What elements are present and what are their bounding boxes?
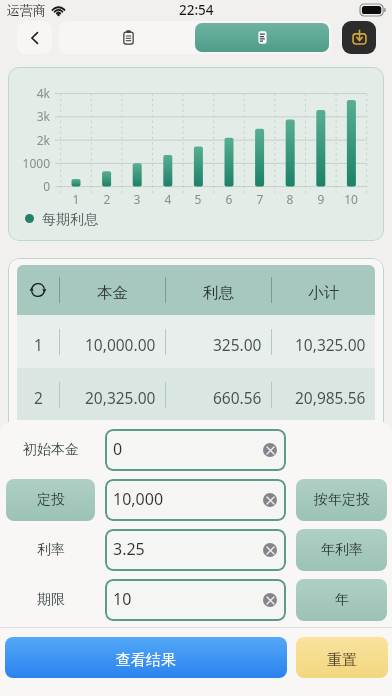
staticText: 325.00 [213,334,262,355]
staticText: 20,985.56 [295,387,366,408]
button[interactable]: Download [342,21,376,54]
button[interactable]: 10 [105,579,286,621]
staticText: 年利率 [321,541,363,559]
staticText: 8 [276,191,304,207]
staticText: 5 [184,191,212,207]
staticText: 6 [215,191,243,207]
staticText: 每期利息 [42,211,98,229]
staticText: 2 [93,191,121,207]
staticText: 660.56 [213,387,262,408]
staticText: 运营商 [7,2,46,18]
staticText: 1000 [8,155,50,171]
button[interactable]: Clear [263,493,277,507]
staticText: 1 [62,191,90,207]
staticText: 22:54 [179,1,214,19]
staticText: 定投 [37,491,65,509]
button[interactable]: Clear [263,543,277,557]
staticText: 7 [246,191,274,207]
staticText: 9 [307,191,335,207]
button[interactable]: Clear [263,593,277,607]
staticText: 重置 [327,651,357,670]
staticText: 3k [8,108,50,124]
staticText: 按年定投 [314,491,370,509]
button[interactable]: 按年定投 [296,479,387,521]
button[interactable]: 3.25 [105,529,286,571]
staticText: 2k [8,132,50,148]
button[interactable]: 年利率 [296,529,387,571]
staticText: 本金 [97,283,128,303]
button[interactable]: Schedule table [61,23,195,52]
button[interactable]: Back [17,21,52,54]
staticText: 3 [123,191,151,207]
staticText: 利息 [203,283,234,303]
staticText: 0 [8,178,50,194]
button[interactable]: 重置 [296,637,388,678]
button[interactable]: 定投 [6,479,95,521]
button[interactable]: 年 [296,579,387,621]
staticText: 20,325.00 [85,387,156,408]
staticText: 1 [34,334,43,355]
button[interactable]: Refresh [17,265,59,315]
button[interactable]: 10,000 [105,479,286,521]
button[interactable]: 查看结果 [5,637,287,678]
staticText: 查看结果 [116,651,176,670]
button[interactable]: Clear [263,443,277,457]
staticText: 10 [113,588,132,610]
staticText: 利率 [37,541,65,559]
staticText: 10,000 [113,488,164,510]
staticText: 2 [34,387,43,408]
staticText: 10,000.00 [85,334,156,355]
staticText: 10 [337,191,365,207]
staticText: 小计 [308,283,339,303]
staticText: 3.25 [113,538,145,560]
staticText: 0 [113,438,123,460]
staticText: 4k [8,85,50,101]
button[interactable]: 1 [17,315,375,368]
button[interactable]: Report [195,23,329,52]
staticText: 年 [335,591,349,609]
button[interactable]: 2 [17,368,375,421]
button[interactable]: 0 [105,429,286,471]
staticText: 4 [154,191,182,207]
staticText: 10,325.00 [295,334,366,355]
staticText: 期限 [37,591,65,609]
staticText: 初始本金 [23,441,79,459]
